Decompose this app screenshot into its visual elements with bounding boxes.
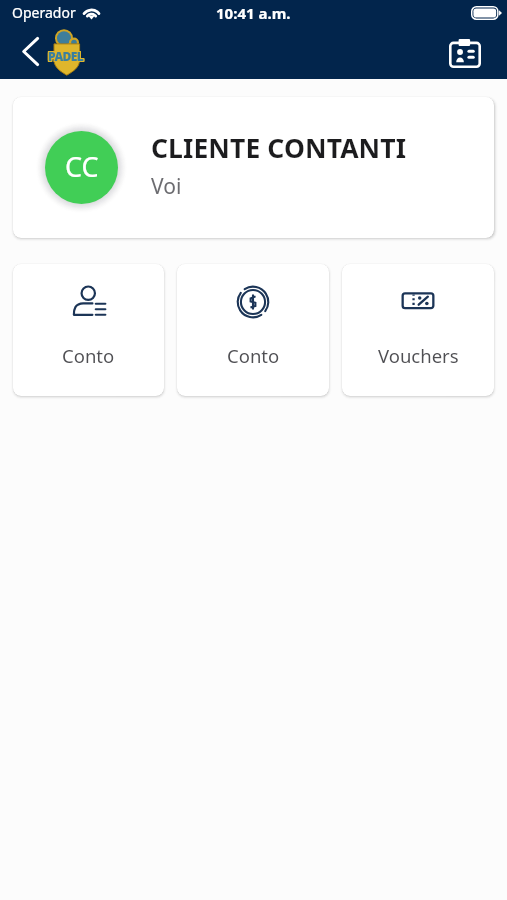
button[interactable]: CC [13,97,494,238]
button[interactable]: Vouchers [342,264,494,396]
staticText: Conto [62,343,115,368]
button[interactable]: Tessera cliente [444,33,486,75]
staticText: Conto [227,343,280,368]
staticText: Vouchers [378,343,459,368]
button[interactable]: Conto [177,264,329,396]
button[interactable]: Indietro [10,31,50,71]
staticText: PADEL [48,48,84,64]
staticText: PADEL [48,49,84,65]
button[interactable]: Conto [13,264,164,396]
staticText: PADEL [49,47,85,63]
staticText: PADEL [47,47,83,63]
staticText: PADEL [47,48,83,64]
staticText: Operador [12,3,76,22]
staticText: PADEL [47,49,83,65]
staticText: Voi [151,172,182,201]
staticText: CLIENTE CONTANTI [151,130,407,166]
staticText: CC [65,148,99,185]
staticText: 10:41 a.m. [216,3,291,23]
staticText: PADEL [48,47,84,63]
staticText: PADEL [49,48,85,64]
staticText: PADEL [49,49,85,65]
